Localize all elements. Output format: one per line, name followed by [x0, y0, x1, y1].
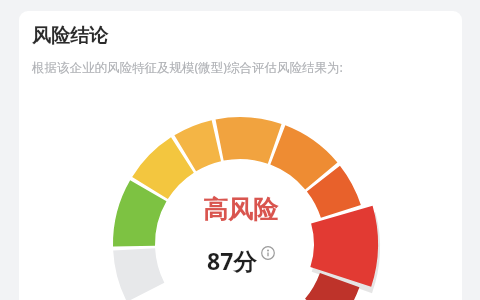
staticText: 高风险	[203, 194, 278, 225]
staticText: 风险结论	[32, 24, 108, 48]
button[interactable]: 风险结论	[19, 11, 462, 300]
staticText: 根据该企业的风险特征及规模(微型)综合评估风险结果为:	[32, 59, 343, 76]
button[interactable]: 评分说明	[261, 246, 275, 260]
other: 风险评分仪表盘 87分 高风险	[19, 11, 462, 300]
staticText: 87分	[207, 245, 257, 276]
